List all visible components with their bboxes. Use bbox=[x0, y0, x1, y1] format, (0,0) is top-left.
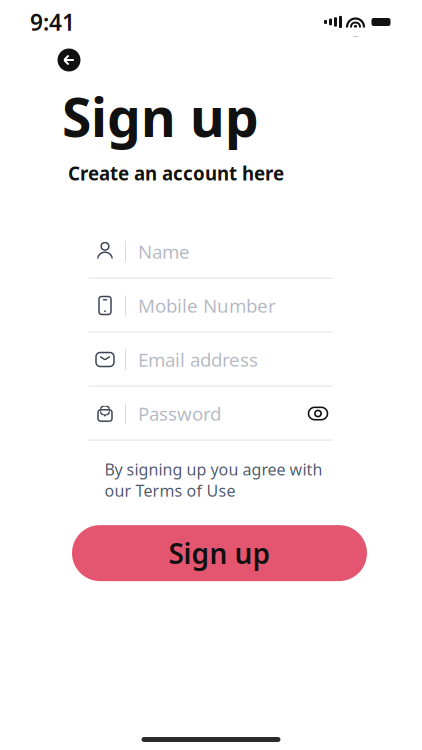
button[interactable]: Show password bbox=[303, 398, 333, 428]
staticText: Name bbox=[138, 239, 190, 264]
staticText: Create an account here bbox=[68, 161, 284, 186]
button[interactable]: Sign up bbox=[72, 525, 367, 581]
staticText: Email address bbox=[138, 347, 258, 372]
staticText: Password bbox=[138, 401, 221, 426]
staticText: Mobile Number bbox=[138, 293, 276, 318]
staticText: By signing up you agree with our Terms o… bbox=[104, 459, 322, 501]
staticText: Sign up bbox=[168, 534, 270, 572]
staticText: Sign up bbox=[62, 81, 259, 152]
staticText: 9:41 bbox=[30, 7, 75, 37]
button[interactable]: Back bbox=[52, 45, 86, 75]
